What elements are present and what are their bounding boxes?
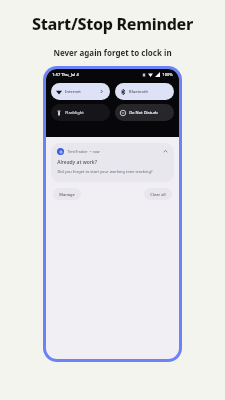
button[interactable]: Bluetooth <box>115 83 174 100</box>
button[interactable]: Do Not Disturb <box>115 104 174 121</box>
button[interactable]: Clear all <box>144 188 172 200</box>
staticText: Manage <box>59 192 75 197</box>
staticText: Internet <box>65 89 81 94</box>
staticText: Never again forget to clock in <box>53 47 172 58</box>
staticText: Already at work? <box>57 159 97 166</box>
button[interactable]: Manage <box>53 188 81 200</box>
staticText: Flashlight <box>65 110 84 115</box>
staticText: Do Not Disturb <box>129 110 158 115</box>
staticText: Start/Stop Reminder <box>32 13 193 35</box>
staticText: Clear all <box>150 192 166 197</box>
staticText: TimeTracker • now <box>67 149 100 154</box>
button[interactable]: TimeTracker • now <box>51 143 174 182</box>
staticText: Did you forget to start your working tim… <box>57 169 153 174</box>
button[interactable]: Flashlight <box>51 104 110 121</box>
staticText: 1:57 Thu, Jul 4 <box>52 72 79 77</box>
staticText: Bluetooth <box>129 89 148 94</box>
staticText: 100% <box>162 72 173 77</box>
button[interactable]: Internet <box>51 83 110 100</box>
